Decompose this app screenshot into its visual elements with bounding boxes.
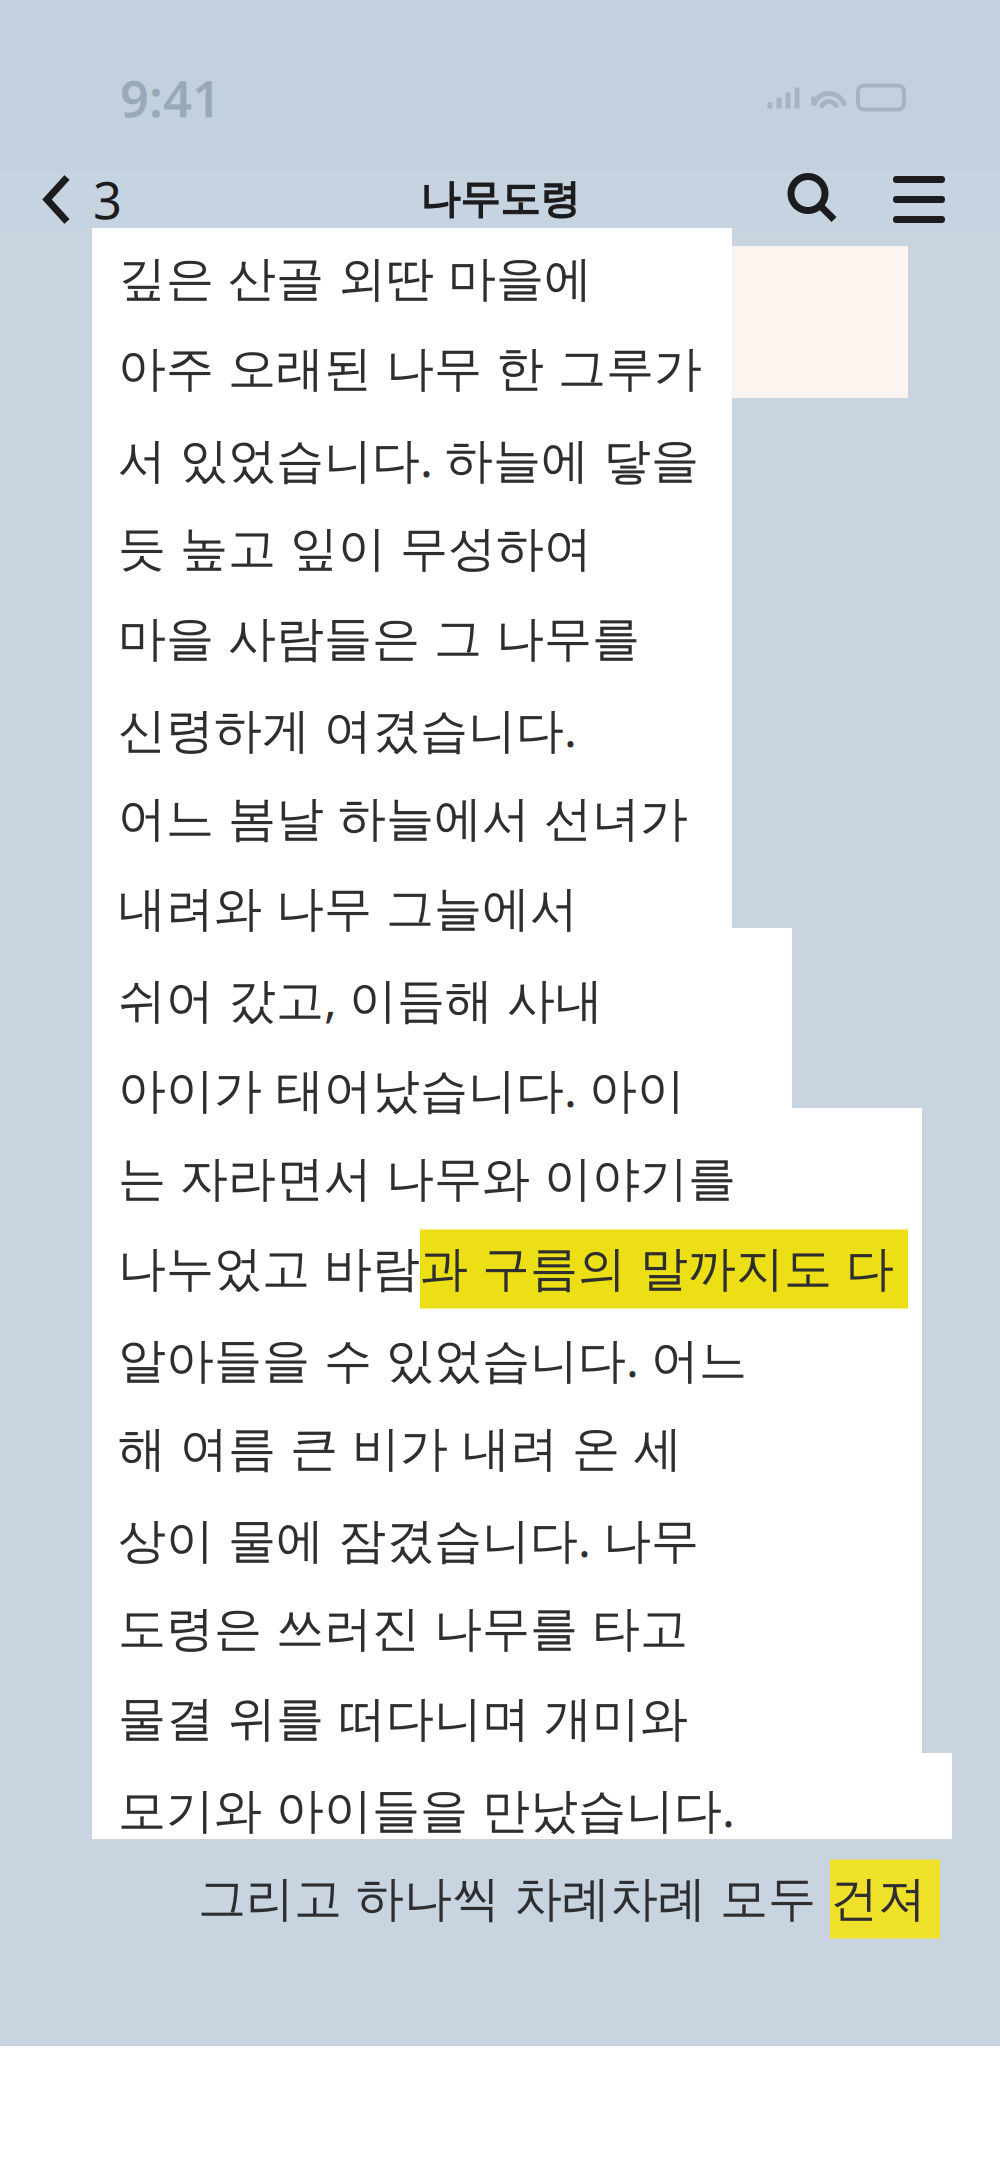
staticText: 쉬어 갔고, 이듬해 사내 [118,967,603,1031]
staticText: 깊은 산골 외딴 마을에 [118,249,592,308]
staticText: 마을 사람들은 그 나무를 [118,609,640,668]
button[interactable]: Search [769,171,857,228]
staticText: 내려와 나무 그늘에서 [118,879,578,938]
staticText: 과 구름의 말까지도 다 [420,1239,894,1298]
staticText: 아주 오래된 나무 한 그루가 [118,339,702,398]
staticText: 어느 봄날 하늘에서 선녀가 [118,789,688,848]
staticText: 상이 물에 잠겼습니다. 나무 [118,1507,699,1571]
staticText: 9:41 [120,64,221,131]
staticText: 물결 위를 떠다니며 개미와 [118,1689,688,1748]
staticText: 그리고 하나씩 차례차례 모두 [198,1869,830,1928]
staticText: 나누었고 바람 [118,1239,420,1298]
staticText: 3 [93,166,122,233]
staticText: 나무도령 [420,175,580,224]
staticText: 도령은 쓰러진 나무를 타고 [118,1599,688,1658]
staticText: 는 자라면서 나무와 이야기를 [118,1149,736,1208]
staticText: 아이가 태어났습니다. 아이 [118,1057,685,1121]
staticText: 알아들을 수 있었습니다. 어느 [118,1327,747,1391]
button[interactable]: Menu [857,171,1000,228]
staticText: 서 있었습니다. 하늘에 닿을 [118,427,699,491]
staticText: 듯 높고 잎이 무성하여 [118,519,592,578]
staticText: 신령하게 여겼습니다. [118,697,577,761]
staticText: 모기와 아이들을 만났습니다. [118,1777,735,1841]
button[interactable]: 3 [0,171,148,228]
staticText: 건져 [830,1869,926,1928]
staticText: 해 여름 큰 비가 내려 온 세 [118,1419,682,1478]
